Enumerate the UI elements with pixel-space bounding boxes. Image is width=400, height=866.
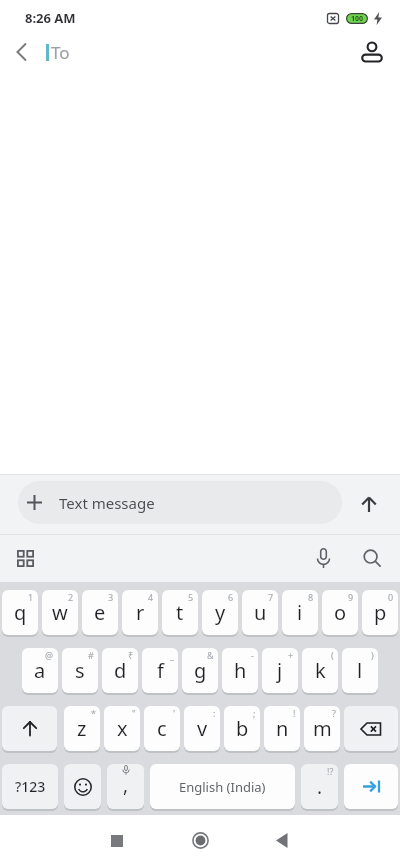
button[interactable] — [302, 534, 344, 582]
button[interactable]: h — [222, 648, 258, 693]
staticText: , — [123, 772, 129, 798]
staticText: w — [52, 599, 68, 626]
staticText: - — [251, 649, 254, 661]
staticText: " — [132, 707, 136, 719]
staticText: ( — [331, 649, 334, 661]
button[interactable]: o — [322, 590, 358, 635]
button[interactable]: z — [64, 706, 100, 751]
staticText: !? — [327, 765, 334, 777]
staticText: u — [254, 599, 267, 626]
staticText: Text message — [59, 493, 155, 513]
staticText: p — [374, 599, 387, 626]
button[interactable]: English (India) — [150, 764, 295, 809]
staticText: 1 — [28, 591, 34, 603]
button[interactable]: j — [262, 648, 298, 693]
staticText: 0 — [388, 591, 394, 603]
button[interactable]: a — [22, 648, 58, 693]
staticText: To — [51, 41, 344, 64]
staticText: 8:26 AM — [25, 9, 76, 27]
button[interactable]: t — [162, 590, 198, 635]
button[interactable]: e — [82, 590, 118, 635]
button[interactable]: p — [362, 590, 398, 635]
staticText: i — [297, 599, 303, 626]
button[interactable]: x — [104, 706, 140, 751]
button[interactable]: v — [184, 706, 220, 751]
staticText: 100 — [351, 14, 364, 24]
staticText: 8 — [308, 591, 314, 603]
button[interactable]: b — [224, 706, 260, 751]
button[interactable] — [257, 815, 307, 866]
button[interactable]: g — [182, 648, 218, 693]
button[interactable]: k — [302, 648, 338, 693]
staticText: 9 — [348, 591, 354, 603]
button[interactable]: w — [42, 590, 78, 635]
staticText: y — [215, 599, 226, 626]
button[interactable] — [64, 764, 101, 809]
button[interactable] — [344, 534, 400, 582]
button[interactable]: y — [202, 590, 238, 635]
staticText: f — [157, 657, 164, 684]
staticText: 2 — [68, 591, 74, 603]
staticText: # — [88, 649, 94, 661]
staticText: ; — [253, 707, 256, 719]
staticText: v — [197, 715, 208, 742]
staticText: . — [317, 774, 323, 800]
staticText: 3 — [108, 591, 114, 603]
button[interactable] — [92, 815, 142, 866]
button[interactable] — [344, 30, 400, 74]
staticText: b — [236, 715, 249, 742]
staticText: m — [313, 715, 332, 742]
staticText: n — [276, 715, 289, 742]
staticText: ₹ — [128, 649, 134, 661]
staticText: ? — [332, 707, 336, 719]
staticText: 4 — [148, 591, 154, 603]
staticText: + — [288, 649, 294, 661]
staticText: g — [194, 657, 207, 684]
staticText: ' — [173, 707, 176, 719]
button[interactable]: s — [62, 648, 98, 693]
button[interactable]: q — [2, 590, 38, 635]
button[interactable]: ?123 — [2, 764, 58, 809]
button[interactable]: c — [144, 706, 180, 751]
staticText: x — [117, 715, 128, 742]
staticText: 6 — [228, 591, 234, 603]
staticText: 5 — [188, 591, 194, 603]
staticText: c — [157, 715, 167, 742]
staticText: * — [91, 707, 96, 719]
button[interactable]: i — [282, 590, 318, 635]
staticText: k — [315, 657, 326, 684]
button[interactable]: l — [342, 648, 378, 693]
button[interactable] — [0, 534, 50, 582]
staticText: _ — [170, 649, 174, 661]
staticText: d — [114, 657, 127, 684]
staticText: @ — [45, 649, 54, 661]
button[interactable] — [344, 764, 398, 809]
button[interactable] — [0, 30, 42, 74]
staticText: & — [207, 649, 214, 661]
button[interactable]: Text message — [18, 481, 342, 524]
button[interactable] — [175, 815, 225, 866]
staticText: j — [277, 657, 283, 684]
button[interactable]: . — [301, 764, 338, 809]
button[interactable]: m — [304, 706, 340, 751]
button[interactable]: u — [242, 590, 278, 635]
staticText: r — [136, 599, 145, 626]
staticText: 7 — [268, 591, 274, 603]
button[interactable] — [337, 474, 400, 534]
staticText: l — [357, 657, 363, 684]
staticText: a — [34, 657, 46, 684]
staticText: ) — [371, 649, 374, 661]
button[interactable] — [344, 706, 398, 751]
button[interactable]: r — [122, 590, 158, 635]
staticText: z — [77, 715, 87, 742]
button[interactable]: d — [102, 648, 138, 693]
staticText: : — [213, 707, 216, 719]
button[interactable]: n — [264, 706, 300, 751]
staticText: q — [14, 599, 27, 626]
button[interactable]: , — [107, 764, 144, 809]
button[interactable]: f — [142, 648, 178, 693]
staticText: t — [176, 599, 184, 626]
staticText: s — [75, 657, 85, 684]
button[interactable] — [2, 706, 57, 751]
staticText: e — [94, 599, 106, 626]
